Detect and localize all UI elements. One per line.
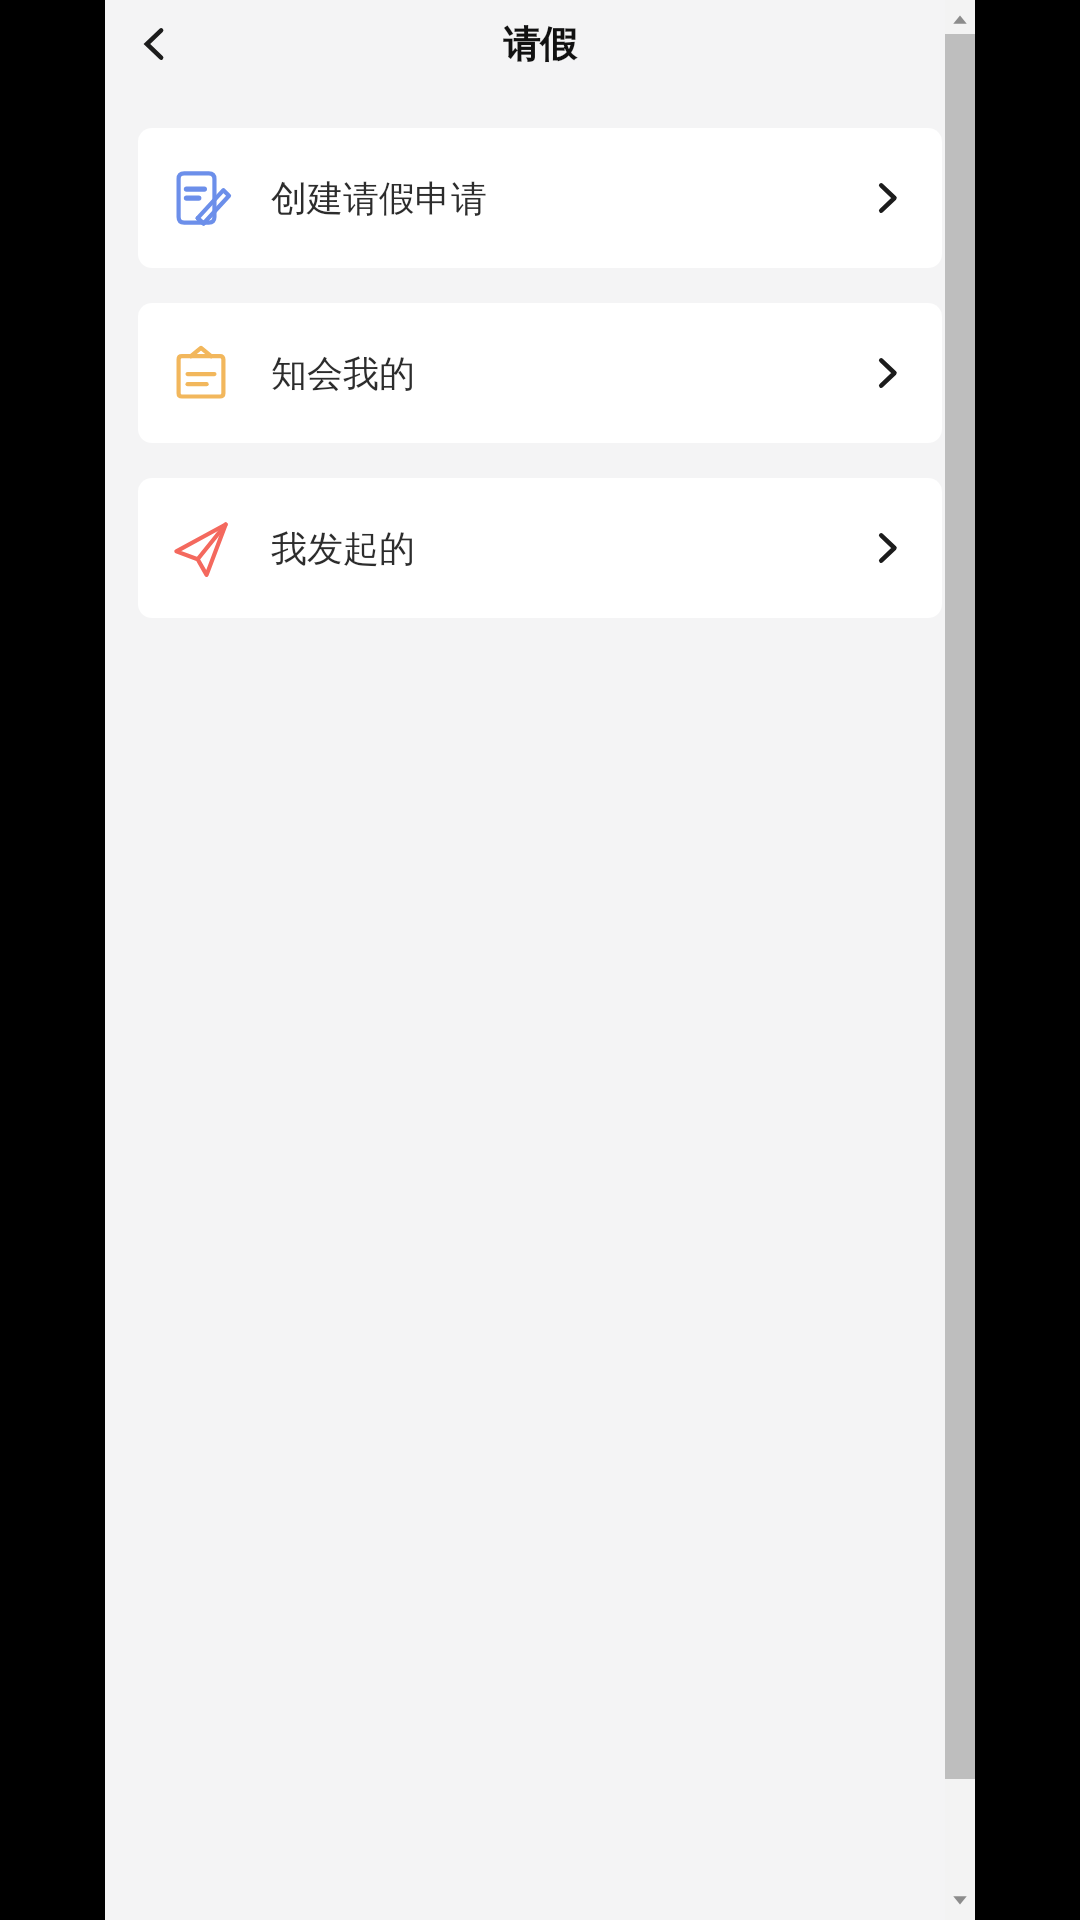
button[interactable]: 返回 bbox=[123, 12, 187, 76]
staticText: 知会我的 bbox=[271, 351, 415, 396]
staticText: 请假 bbox=[503, 21, 577, 68]
staticText: 创建请假申请 bbox=[271, 176, 487, 221]
staticText: 我发起的 bbox=[271, 526, 415, 571]
button[interactable]: 知会我的 bbox=[138, 303, 942, 443]
button[interactable]: 创建请假申请 bbox=[138, 128, 942, 268]
button[interactable]: 我发起的 bbox=[138, 478, 942, 618]
